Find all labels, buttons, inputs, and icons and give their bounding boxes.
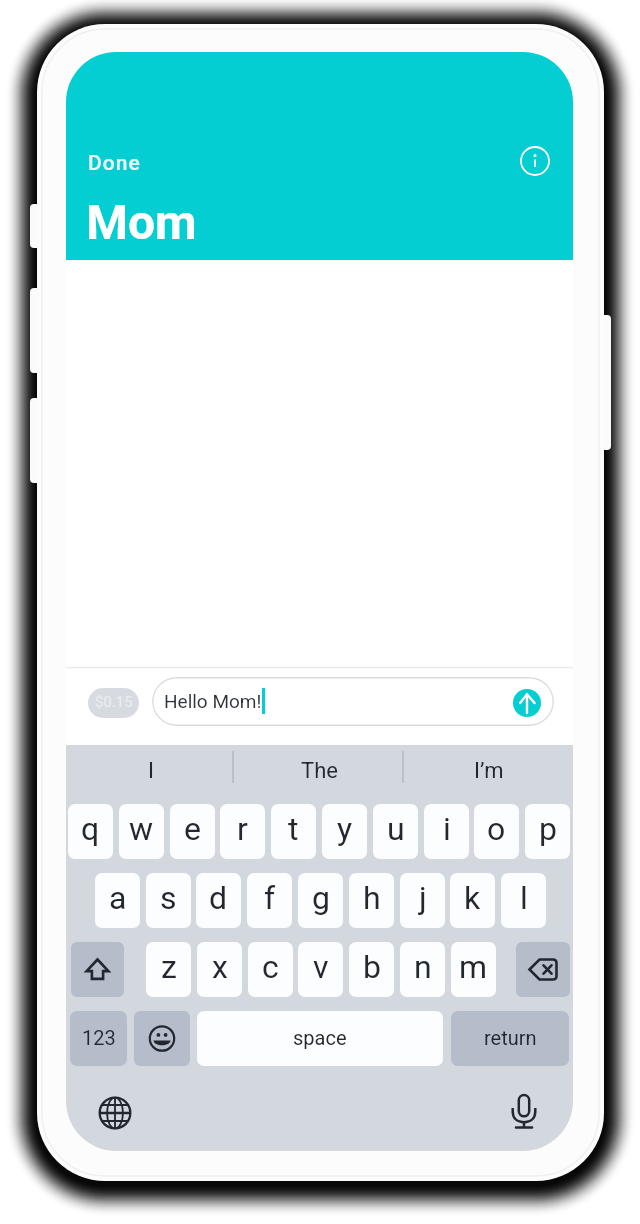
button[interactable]: w <box>119 804 164 859</box>
staticText: d <box>209 879 228 917</box>
button[interactable]: j <box>400 873 445 928</box>
button[interactable]: Done <box>88 151 141 176</box>
staticText: w <box>129 810 154 848</box>
staticText: m <box>459 948 488 986</box>
staticText: q <box>81 810 100 848</box>
staticText: k <box>464 879 481 917</box>
button[interactable]: The <box>235 745 404 797</box>
staticText: return <box>484 1026 537 1049</box>
staticText: b <box>363 948 381 986</box>
button[interactable]: s <box>146 873 191 928</box>
button[interactable]: g <box>298 873 343 928</box>
button[interactable]: h <box>349 873 394 928</box>
button[interactable]: y <box>322 804 367 859</box>
staticText: 123 <box>82 1026 116 1049</box>
button[interactable]: t <box>271 804 316 859</box>
staticText: f <box>264 879 276 917</box>
button[interactable]: q <box>68 804 113 859</box>
staticText: n <box>414 948 432 986</box>
button[interactable]: $0.15 <box>88 688 139 718</box>
button[interactable]: k <box>450 873 495 928</box>
staticText: a <box>109 879 127 917</box>
staticText: h <box>363 879 381 917</box>
button[interactable]: i <box>424 804 469 859</box>
button[interactable]: r <box>220 804 265 859</box>
staticText: s <box>160 879 177 917</box>
button[interactable]: I’m <box>404 745 573 797</box>
button[interactable]: Hello Mom! <box>152 677 554 726</box>
button[interactable]: m <box>451 942 496 997</box>
button[interactable]: o <box>474 804 519 859</box>
button[interactable]: p <box>525 804 570 859</box>
staticText: I <box>148 758 154 784</box>
staticText: e <box>184 810 201 848</box>
button[interactable]: v <box>298 942 343 997</box>
button[interactable]: I <box>66 745 235 797</box>
button[interactable]: Send <box>513 689 541 717</box>
button[interactable]: f <box>247 873 292 928</box>
button[interactable]: return <box>451 1011 569 1066</box>
button[interactable]: u <box>373 804 418 859</box>
staticText: l <box>520 879 528 917</box>
button[interactable]: Emoji <box>134 1011 190 1066</box>
staticText: $0.15 <box>95 693 133 711</box>
button[interactable]: z <box>146 942 191 997</box>
staticText: t <box>288 810 299 848</box>
staticText: p <box>539 810 557 848</box>
staticText: r <box>237 810 248 848</box>
button[interactable]: Switch keyboard language <box>95 1093 135 1133</box>
button[interactable]: d <box>196 873 241 928</box>
staticText: The <box>301 758 338 784</box>
button[interactable]: c <box>248 942 293 997</box>
button[interactable]: a <box>95 873 140 928</box>
staticText: I’m <box>474 758 504 784</box>
staticText: u <box>387 810 405 848</box>
staticText: j <box>419 879 427 917</box>
button[interactable]: b <box>349 942 394 997</box>
button[interactable]: n <box>400 942 445 997</box>
button[interactable]: l <box>501 873 546 928</box>
button[interactable]: x <box>197 942 242 997</box>
staticText: Hello Mom! <box>164 690 262 712</box>
staticText: v <box>313 948 329 986</box>
staticText: x <box>212 948 228 986</box>
staticText: i <box>443 810 451 848</box>
staticText: z <box>161 948 177 986</box>
staticText: g <box>312 879 330 917</box>
staticText: Mom <box>86 194 197 250</box>
staticText: y <box>337 810 353 848</box>
button[interactable]: space <box>197 1011 443 1066</box>
staticText: space <box>293 1026 347 1049</box>
button[interactable]: Backspace <box>516 942 570 997</box>
button[interactable]: Voice input <box>504 1090 544 1134</box>
button[interactable]: 123 <box>70 1011 127 1066</box>
staticText: c <box>262 948 279 986</box>
button[interactable]: e <box>170 804 215 859</box>
button[interactable]: Conversation info <box>520 146 550 176</box>
button[interactable]: Shift <box>71 942 124 997</box>
staticText: o <box>487 810 506 848</box>
